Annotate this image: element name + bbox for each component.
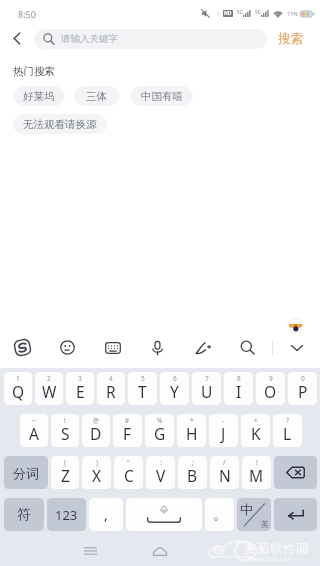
button[interactable]: Keyboard <box>90 327 135 368</box>
staticText: R <box>106 381 116 402</box>
staticText: / <box>223 458 226 467</box>
button[interactable]: 7 <box>192 372 221 405</box>
staticText: M <box>249 465 264 486</box>
button[interactable]: Home <box>147 538 173 564</box>
staticText: 麦葱软件园 <box>244 540 309 556</box>
staticText: 8 <box>237 374 241 383</box>
button[interactable]: 9 <box>256 372 285 405</box>
staticText: 无法观看请换源 <box>23 118 97 131</box>
staticText: J <box>221 423 226 444</box>
button[interactable]: - <box>209 414 238 447</box>
staticText: 3 <box>78 374 82 383</box>
staticText: O <box>264 381 277 402</box>
button[interactable]: 5 <box>128 372 157 405</box>
staticText: 5G <box>237 9 243 15</box>
button[interactable]: ) <box>82 456 111 489</box>
staticText: # <box>125 416 130 425</box>
button[interactable]: 6 <box>160 372 189 405</box>
staticText: 7 <box>205 374 209 383</box>
staticText: C <box>124 465 134 486</box>
button[interactable]: Handwriting <box>180 327 225 368</box>
button[interactable]: Space <box>126 498 202 531</box>
staticText: 5G <box>255 9 261 15</box>
staticText: 热门搜索 <box>13 65 55 78</box>
button[interactable]: Hide keyboard <box>273 327 320 368</box>
button[interactable]: 0 <box>288 372 317 405</box>
button[interactable]: 请输入关键字 <box>34 29 267 49</box>
staticText: H <box>186 423 198 444</box>
staticText: G <box>154 423 166 444</box>
button[interactable]: * <box>177 414 206 447</box>
button[interactable]: / <box>210 456 239 489</box>
staticText: 中国有嘻 <box>141 90 183 103</box>
button[interactable]: 无法观看请换源 <box>13 114 107 134</box>
staticText: :: <box>217 10 220 17</box>
staticText: P <box>298 381 308 402</box>
staticText: W <box>42 381 57 402</box>
button[interactable]: Enter <box>274 498 317 531</box>
staticText: : <box>160 458 162 467</box>
button[interactable]: ~ <box>20 414 48 447</box>
button[interactable]: Recents <box>77 538 103 564</box>
button[interactable]: ; <box>178 456 207 489</box>
button[interactable]: Search <box>225 327 270 368</box>
button[interactable]: 2 <box>35 372 63 405</box>
button[interactable]: 分词 <box>4 456 48 489</box>
staticText: X <box>92 465 102 486</box>
staticText: 4 <box>109 374 113 383</box>
button[interactable]: 。 <box>205 498 234 531</box>
button[interactable]: + <box>241 414 270 447</box>
staticText: 三体 <box>86 90 107 103</box>
button[interactable]: Chinese English toggle <box>237 498 271 531</box>
button[interactable]: Back <box>0 27 34 50</box>
button[interactable]: 符 <box>4 498 44 531</box>
staticText: ) <box>96 458 98 467</box>
button[interactable]: Emoji <box>45 327 90 368</box>
staticText: ~ <box>32 416 36 425</box>
button[interactable]: % <box>145 414 174 447</box>
button[interactable]: , <box>89 498 123 531</box>
staticText: " <box>127 458 130 467</box>
staticText: A <box>29 423 39 444</box>
button[interactable]: ? <box>273 414 302 447</box>
staticText: V <box>156 465 166 486</box>
button[interactable]: @ <box>82 414 110 447</box>
button[interactable]: 好莱坞 <box>13 86 65 106</box>
button[interactable]: : <box>146 456 175 489</box>
staticText: 搜索 <box>278 31 303 47</box>
button[interactable]: Sogou input <box>0 327 45 368</box>
staticText: 分词 <box>13 465 39 481</box>
staticText: D <box>90 423 102 444</box>
staticText: U <box>201 381 213 402</box>
staticText: 9 <box>269 374 273 383</box>
button[interactable]: Voice input <box>135 327 180 368</box>
button[interactable]: 中国有嘻 <box>131 86 193 106</box>
button[interactable]: " <box>114 456 143 489</box>
staticText: * <box>190 416 194 425</box>
staticText: N <box>219 465 231 486</box>
button[interactable]: 123 <box>47 498 86 531</box>
staticText: E <box>76 381 85 402</box>
button[interactable]: ( <box>51 456 79 489</box>
staticText: Q <box>12 381 25 402</box>
button[interactable]: 三体 <box>74 86 119 106</box>
button[interactable]: # <box>113 414 142 447</box>
staticText: 0 <box>301 374 305 383</box>
staticText: T <box>138 381 147 402</box>
staticText: 中 <box>240 501 253 517</box>
button[interactable]: ! <box>51 414 79 447</box>
button[interactable]: 3 <box>66 372 94 405</box>
staticText: 符 <box>17 506 31 523</box>
button[interactable]: Backspace <box>274 456 317 489</box>
staticText: 5 <box>141 374 145 383</box>
staticText: ; <box>192 458 194 467</box>
button[interactable]: 1 <box>4 372 32 405</box>
button[interactable]: ! <box>242 456 271 489</box>
button[interactable]: 搜索 <box>267 27 320 50</box>
staticText: ! <box>64 416 66 425</box>
staticText: 123 <box>55 506 78 524</box>
staticText: F <box>123 423 132 444</box>
button[interactable]: 8 <box>224 372 253 405</box>
staticText: ? <box>286 416 289 425</box>
button[interactable]: 4 <box>97 372 125 405</box>
